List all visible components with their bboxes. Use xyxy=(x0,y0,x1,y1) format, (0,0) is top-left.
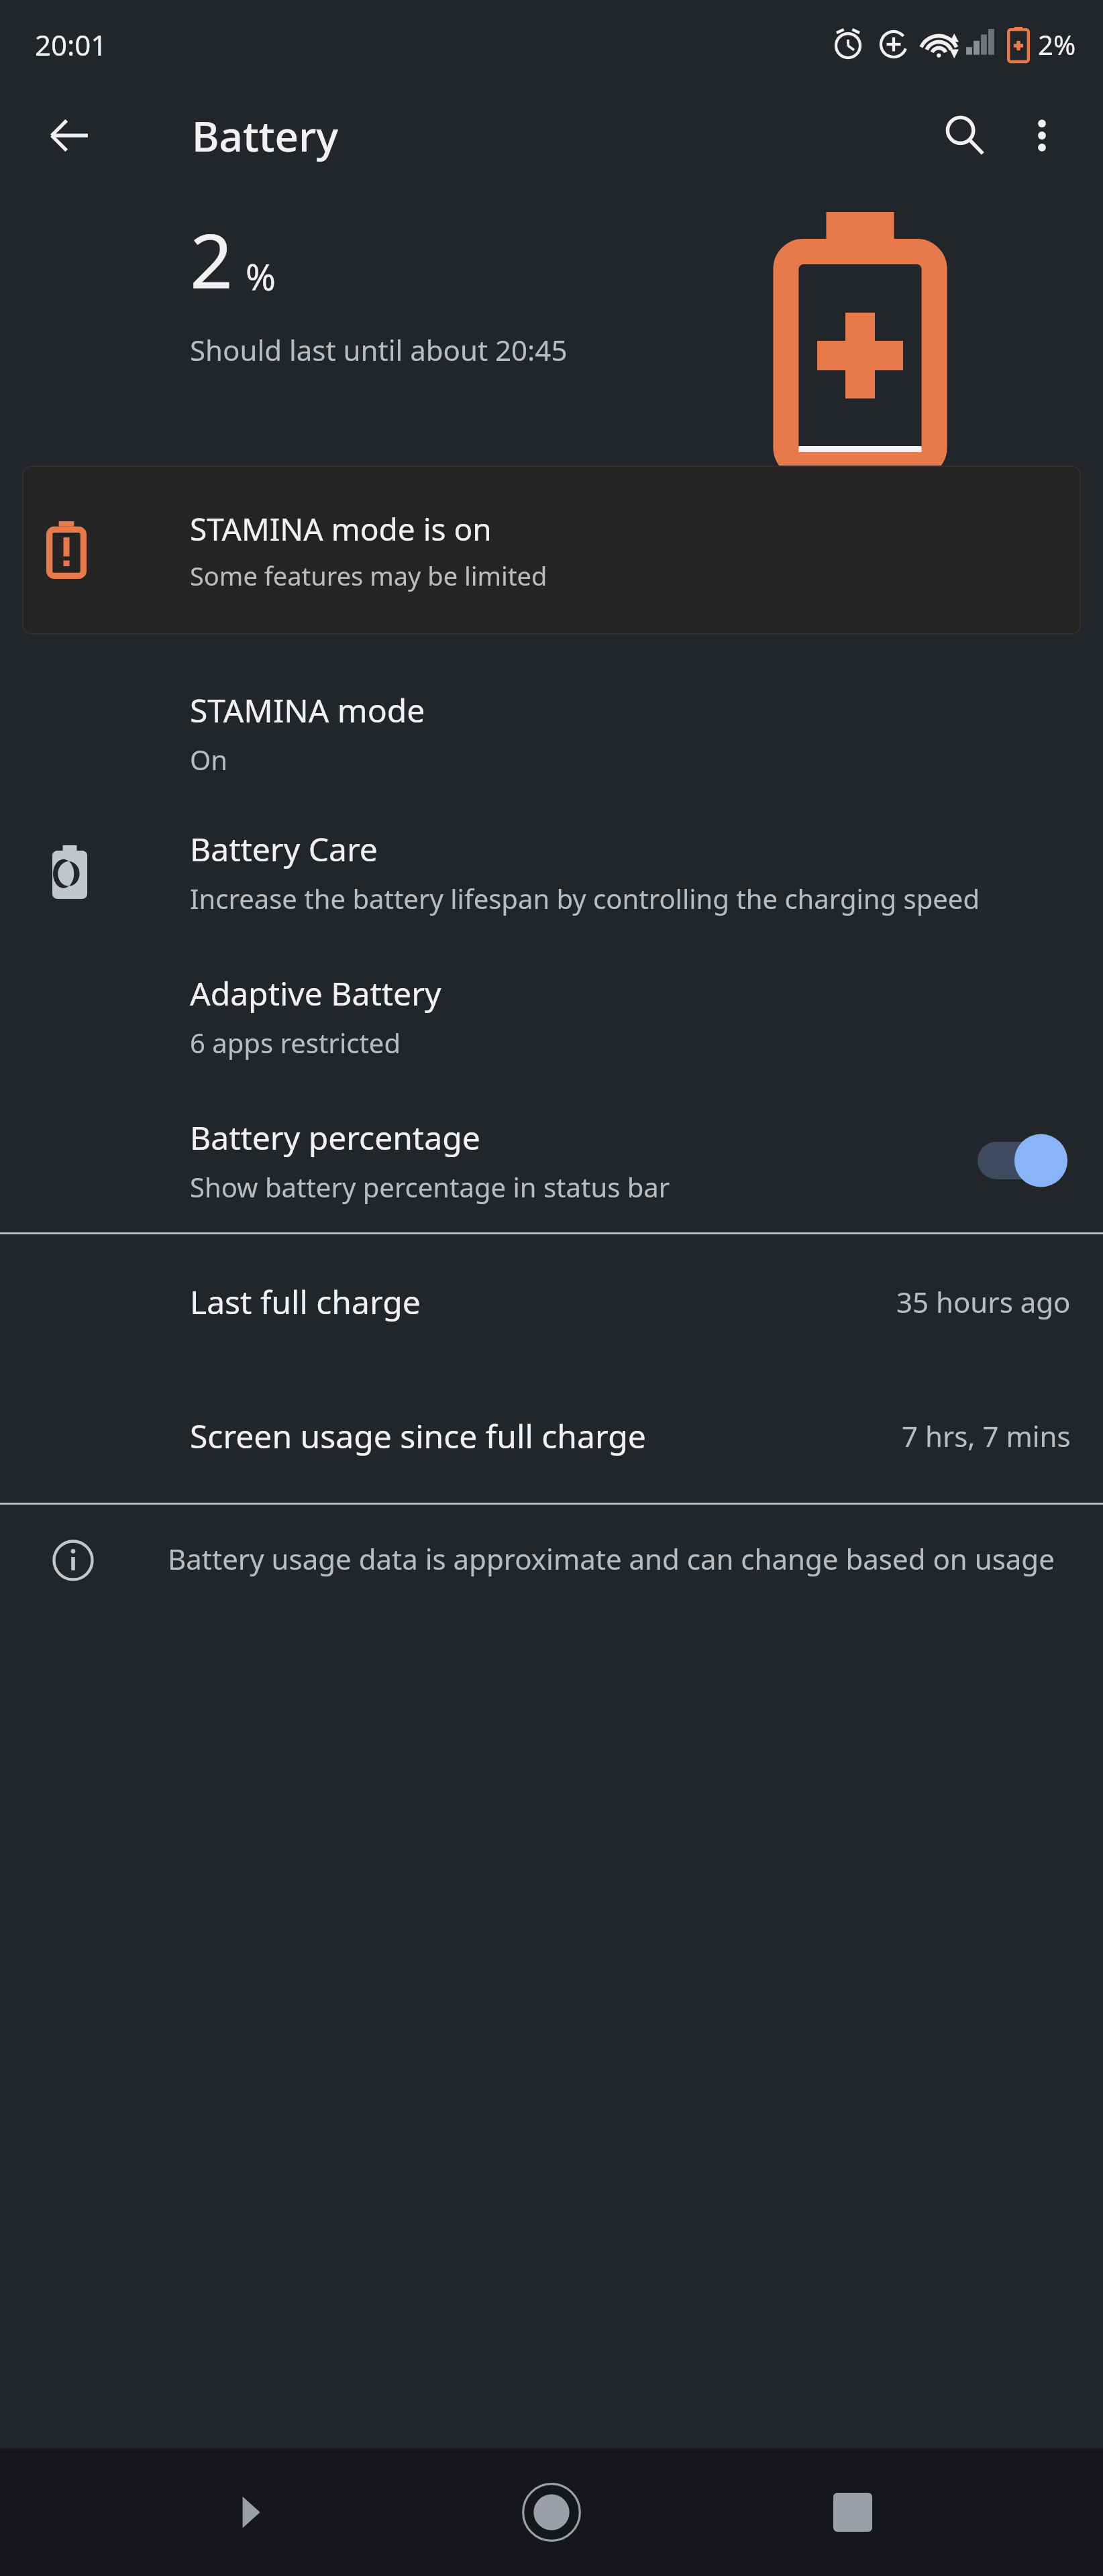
staticText: On xyxy=(190,741,227,777)
staticText: Screen usage since full charge xyxy=(190,1414,646,1458)
staticText: Battery xyxy=(192,107,339,164)
staticText: Last full charge xyxy=(190,1280,421,1324)
staticText: STAMINA mode is on xyxy=(190,508,492,550)
button[interactable]: Battery Care xyxy=(0,800,1103,944)
staticText: 2 xyxy=(190,208,233,311)
staticText: Battery percentage xyxy=(190,1116,480,1159)
staticText: 35 hours ago xyxy=(896,1283,1071,1321)
button[interactable]: Back xyxy=(201,2462,301,2563)
staticText: STAMINA mode xyxy=(190,688,425,732)
staticText: Should last until about 20:45 xyxy=(190,331,568,369)
button[interactable]: STAMINA mode is on xyxy=(22,466,1081,635)
button[interactable]: Back xyxy=(32,99,106,172)
button[interactable]: More options xyxy=(1005,99,1079,172)
staticText: Some features may be limited xyxy=(190,558,547,593)
button[interactable]: Last full charge xyxy=(0,1234,1103,1368)
button[interactable]: STAMINA mode xyxy=(0,665,1103,800)
staticText: % xyxy=(246,252,276,301)
staticText: 2% xyxy=(1038,26,1076,62)
button[interactable]: Battery percentage toggle xyxy=(965,1120,1079,1201)
staticText: Adaptive Battery xyxy=(190,971,441,1015)
button[interactable]: Adaptive Battery xyxy=(0,944,1103,1088)
staticText: 7 hrs, 7 mins xyxy=(902,1417,1071,1455)
button[interactable]: Screen usage since full charge xyxy=(0,1368,1103,1503)
staticText: Battery usage data is approximate and ca… xyxy=(168,1540,1055,1578)
staticText: Battery Care xyxy=(190,827,378,871)
staticText: 6 apps restricted xyxy=(190,1024,401,1061)
staticText: Increase the battery lifespan by control… xyxy=(190,880,980,916)
button[interactable]: Recents xyxy=(802,2462,903,2563)
button[interactable]: Search xyxy=(925,95,1005,176)
button[interactable]: Battery percentage xyxy=(0,1088,1103,1232)
staticText: Show battery percentage in status bar xyxy=(190,1169,670,1205)
staticText: 20:01 xyxy=(35,25,107,64)
button[interactable]: Home xyxy=(501,2462,602,2563)
